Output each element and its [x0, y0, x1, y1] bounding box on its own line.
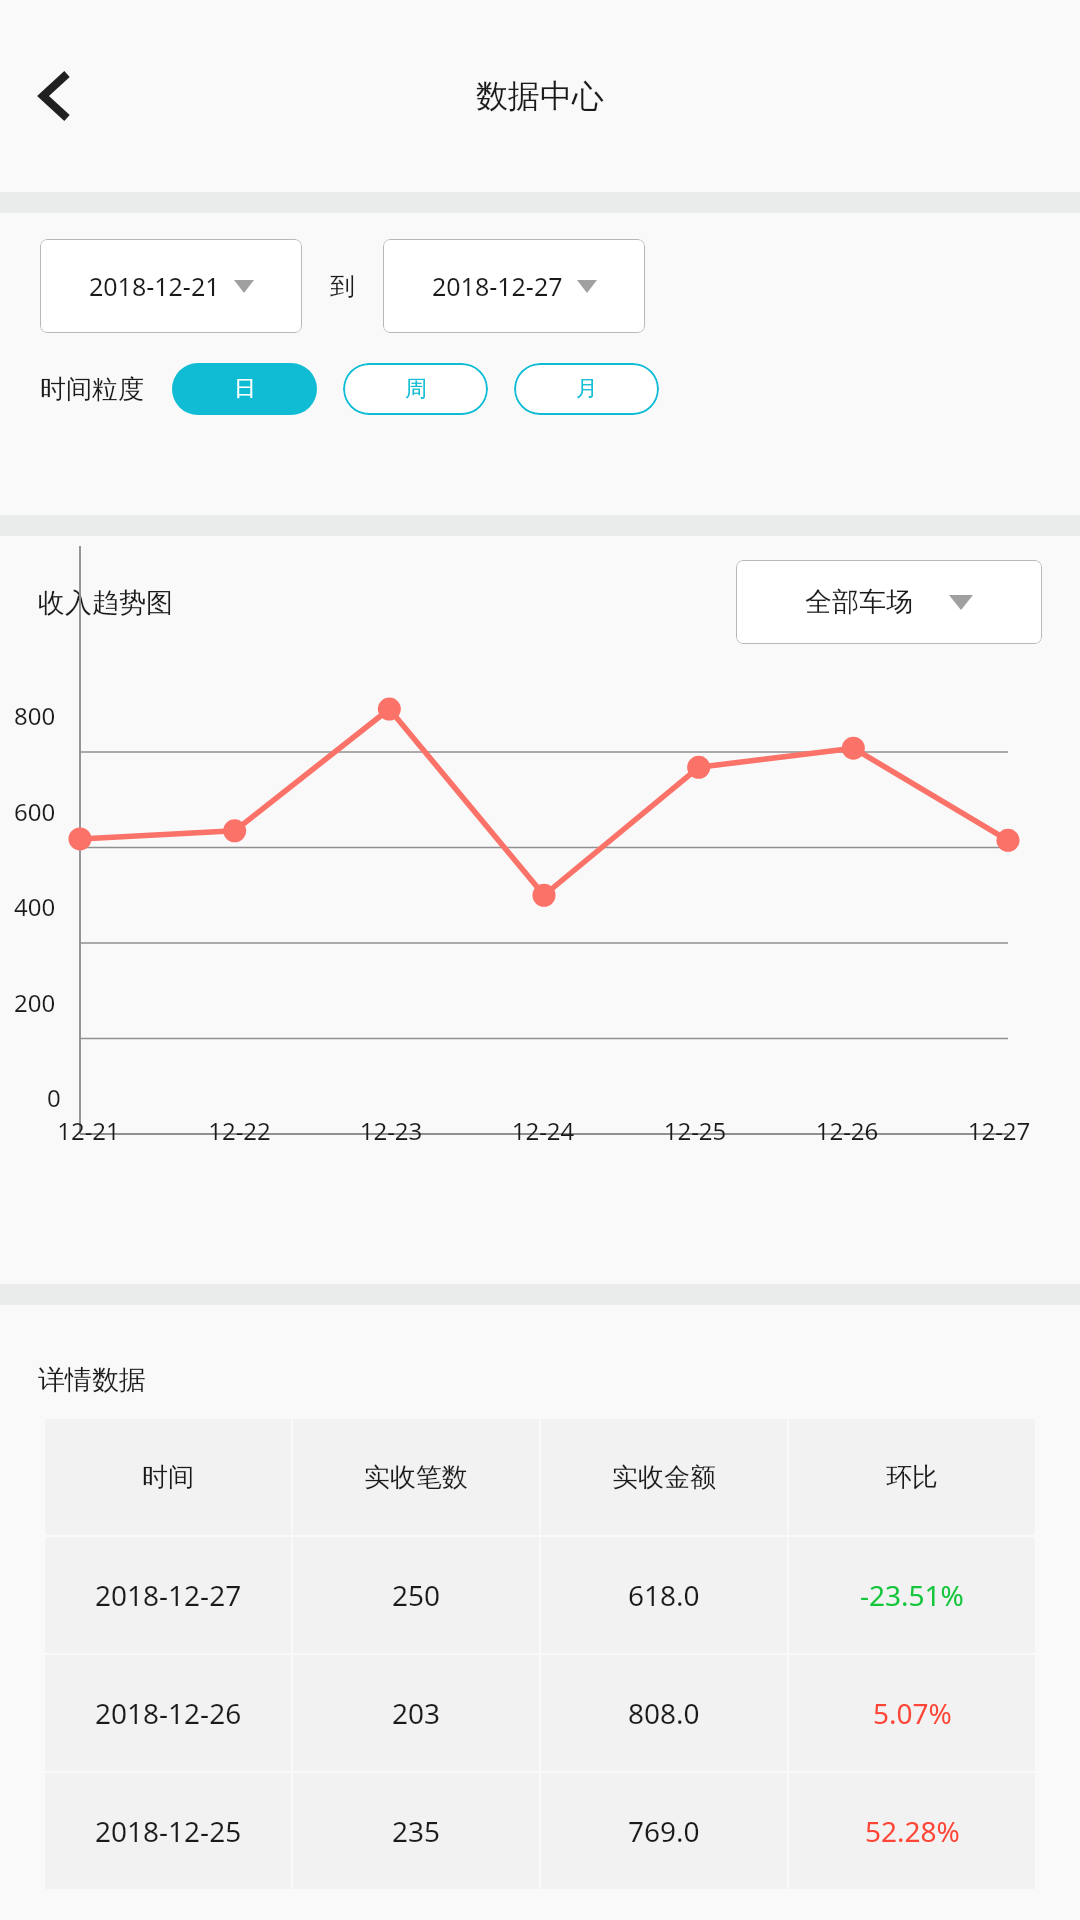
staticText: 时间粒度 [40, 373, 144, 406]
staticText: 618.0 [628, 1576, 700, 1614]
button[interactable]: Start date [40, 239, 302, 333]
staticText: 12-26 [771, 1114, 923, 1147]
staticText: 235 [392, 1812, 441, 1850]
staticText: 808.0 [628, 1694, 700, 1732]
button[interactable]: End date [383, 239, 645, 333]
button[interactable]: 周 [343, 363, 488, 415]
button[interactable]: 2018-12-27 [44, 1537, 1036, 1653]
button[interactable]: 月 [514, 363, 659, 415]
staticText: 12-24 [467, 1114, 619, 1147]
staticText: 时间 [142, 1461, 194, 1494]
staticText: 800 [14, 699, 56, 732]
staticText: 全部车场 [805, 585, 913, 619]
staticText: 12-23 [315, 1114, 467, 1147]
staticText: 52.28% [865, 1812, 960, 1850]
staticText: 5.07% [873, 1694, 952, 1732]
staticText: 月 [576, 375, 598, 403]
staticText: -23.51% [860, 1576, 964, 1614]
staticText: 环比 [886, 1461, 938, 1494]
staticText: 12-21 [13, 1114, 164, 1147]
staticText: 详情数据 [38, 1363, 146, 1397]
staticText: 12-27 [923, 1114, 1075, 1147]
staticText: 769.0 [628, 1812, 700, 1850]
button[interactable]: 2018-12-26 [44, 1655, 1036, 1771]
staticText: 日 [234, 375, 256, 403]
staticText: 203 [392, 1694, 441, 1732]
button[interactable]: Back [14, 56, 94, 136]
staticText: 600 [14, 795, 56, 828]
staticText: 收入趋势图 [38, 586, 173, 620]
button[interactable]: 日 [172, 363, 317, 415]
staticText: 0 [47, 1081, 61, 1114]
staticText: 200 [14, 986, 56, 1019]
staticText: 2018-12-26 [95, 1694, 242, 1732]
staticText: 实收金额 [612, 1461, 716, 1494]
staticText: 2018-12-27 [95, 1576, 242, 1614]
staticText: 数据中心 [476, 76, 604, 116]
staticText: 400 [14, 890, 56, 923]
staticText: 2018-12-21 [89, 269, 220, 303]
button[interactable]: Select lot [736, 560, 1042, 644]
staticText: 250 [392, 1576, 441, 1614]
staticText: 2018-12-25 [95, 1812, 242, 1850]
staticText: 2018-12-27 [432, 269, 563, 303]
staticText: 12-25 [619, 1114, 771, 1147]
staticText: 实收笔数 [364, 1461, 468, 1494]
staticText: 12-22 [164, 1114, 315, 1147]
button[interactable]: 2018-12-25 [44, 1773, 1036, 1889]
button[interactable]: 时间 [44, 1419, 1036, 1535]
staticText: 周 [405, 375, 427, 403]
staticText: 到 [330, 271, 355, 302]
